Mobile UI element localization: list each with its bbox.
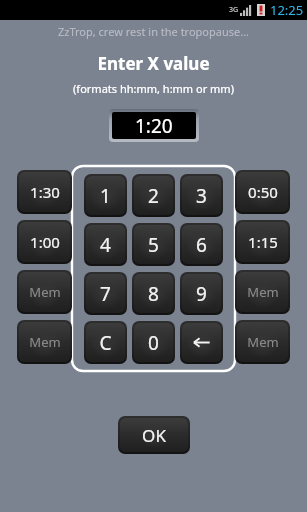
staticText: 6 <box>196 232 207 258</box>
button[interactable]: 1:15 <box>235 220 290 264</box>
staticText: Mem <box>29 283 61 301</box>
staticText: Enter X value <box>0 52 307 75</box>
staticText: 9 <box>196 281 207 307</box>
button[interactable]: 9 <box>180 272 223 315</box>
button[interactable]: Mem <box>17 270 72 314</box>
button[interactable]: 5 <box>132 223 175 266</box>
button[interactable]: 3 <box>180 174 223 217</box>
button[interactable]: Mem <box>17 320 72 364</box>
staticText: 3G <box>229 5 239 15</box>
staticText: 1:15 <box>248 232 278 252</box>
staticText: 3 <box>196 183 207 209</box>
staticText: 12:25 <box>270 1 304 19</box>
staticText: 1:20 <box>135 113 173 139</box>
staticText: 5 <box>148 232 159 258</box>
button[interactable]: 0 <box>132 321 175 364</box>
staticText: Mem <box>247 283 279 301</box>
staticText: 0:50 <box>248 182 278 202</box>
button[interactable]: Mem <box>235 320 290 364</box>
staticText: 7 <box>100 281 111 307</box>
button[interactable]: 1:20 <box>109 109 199 142</box>
button[interactable]: Mem <box>235 270 290 314</box>
staticText: (formats hh:mm, h:mm or mm) <box>0 81 307 96</box>
button[interactable]: C <box>84 321 127 364</box>
staticText: 4 <box>100 232 111 258</box>
staticText: C <box>99 330 112 356</box>
button[interactable]: 8 <box>132 272 175 315</box>
button[interactable]: 2 <box>132 174 175 217</box>
staticText: 1 <box>100 183 111 209</box>
button[interactable]: 1:00 <box>17 220 72 264</box>
button[interactable]: 6 <box>180 223 223 266</box>
staticText: 0 <box>148 330 159 356</box>
button[interactable]: 0:50 <box>235 170 290 214</box>
button[interactable]: 4 <box>84 223 127 266</box>
staticText: 8 <box>148 281 159 307</box>
staticText: Mem <box>247 333 279 351</box>
staticText: 1:00 <box>30 232 60 252</box>
button[interactable]: 1 <box>84 174 127 217</box>
button[interactable]: Backspace <box>180 321 223 364</box>
button[interactable]: OK <box>118 416 190 454</box>
staticText: ZzTrop, crew rest in the tropopause… <box>58 24 249 39</box>
staticText: Mem <box>29 333 61 351</box>
staticText: OK <box>142 424 166 447</box>
staticText: 2 <box>148 183 159 209</box>
staticText: 1:30 <box>30 182 60 202</box>
button[interactable]: 1:30 <box>17 170 72 214</box>
button[interactable]: 7 <box>84 272 127 315</box>
